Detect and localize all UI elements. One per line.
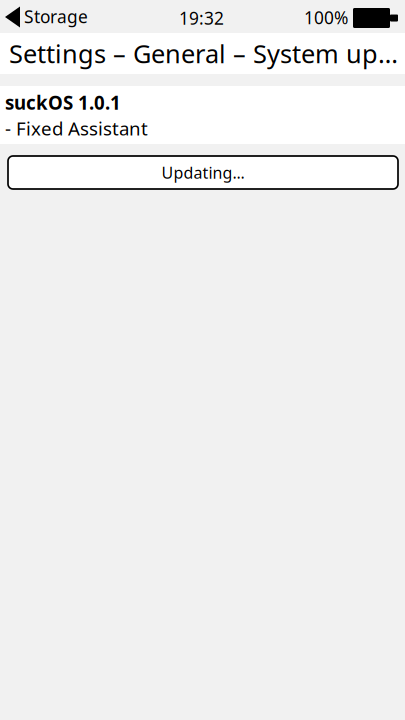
staticText: 19:32 [179, 6, 224, 29]
staticText: Storage [24, 5, 88, 28]
staticText: - Fixed Assistant [5, 116, 148, 141]
staticText: suckOS 1.0.1 [5, 90, 121, 115]
staticText: Settings – General – System up… [9, 37, 398, 70]
button[interactable]: Back to Storage [0, 0, 88, 33]
staticText: Updating... [161, 162, 244, 183]
button[interactable]: Updating... [8, 156, 398, 189]
staticText: 100% [304, 6, 348, 29]
